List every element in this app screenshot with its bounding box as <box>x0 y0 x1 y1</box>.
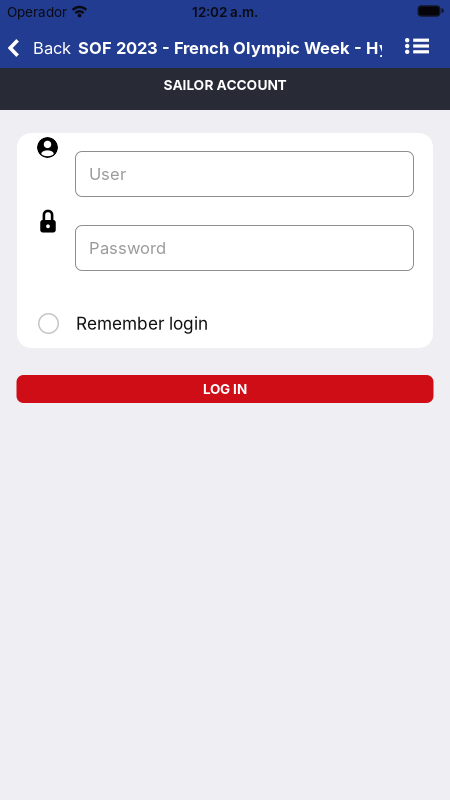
button[interactable]: LOG IN <box>16 375 433 403</box>
button[interactable]: Remember login <box>17 271 208 334</box>
staticText: SOF 2023 - French Olympic Week - Hyères … <box>78 38 450 58</box>
staticText: SAILOR ACCOUNT <box>163 77 286 93</box>
staticText: 12:02 a.m. <box>192 4 258 20</box>
staticText: Password <box>89 238 166 258</box>
button[interactable]: User <box>75 151 414 197</box>
staticText: User <box>89 164 126 184</box>
staticText: Remember login <box>76 313 208 334</box>
button[interactable]: Back <box>0 38 71 58</box>
button[interactable]: Menu <box>405 38 450 58</box>
staticText: LOG IN <box>203 381 247 397</box>
staticText: Back <box>33 38 71 58</box>
staticText: Operador <box>7 4 67 20</box>
button[interactable]: Password <box>75 225 414 271</box>
